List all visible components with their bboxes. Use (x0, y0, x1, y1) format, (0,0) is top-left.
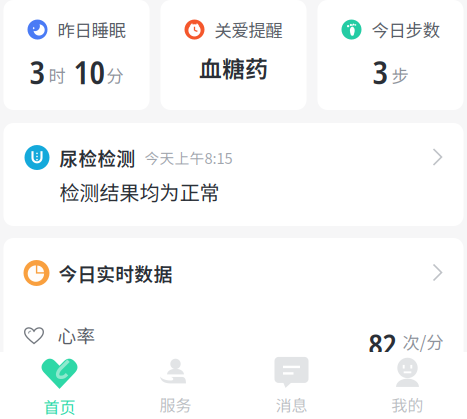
staticText: 检测结果均为正常 (59, 177, 219, 206)
staticText: 3 (372, 50, 388, 94)
staticText: 82 (368, 324, 396, 364)
staticText: 今日步数 (371, 17, 439, 42)
button[interactable]: 关爱提醒 (160, 0, 306, 110)
staticText: 10 (73, 50, 105, 94)
staticText: 分 (106, 63, 123, 88)
staticText: 心率 (57, 321, 95, 348)
button[interactable]: 今日实时数据 (3, 238, 463, 308)
button[interactable]: 尿检检测 (3, 123, 463, 226)
staticText: 步 (391, 63, 408, 88)
staticText: 血糖药 (199, 51, 268, 84)
staticText: 关爱提醒 (214, 17, 282, 42)
staticText: 我的 (391, 393, 423, 416)
button[interactable]: 昨日睡眠 (3, 0, 149, 110)
button[interactable]: 服务 (117, 352, 233, 419)
button[interactable]: 心率 (3, 308, 463, 362)
staticText: 今日实时数据 (58, 259, 172, 286)
staticText: 服务 (159, 393, 191, 416)
staticText: 尿检检测 (59, 144, 135, 171)
staticText: 消息 (275, 393, 307, 416)
staticText: 3 (29, 50, 45, 94)
staticText: 今天上午8:15 (144, 147, 232, 168)
button[interactable]: 我的 (349, 352, 465, 419)
staticText: 昨日睡眠 (57, 17, 125, 42)
staticText: 首页 (43, 395, 75, 418)
staticText: 时 (48, 63, 65, 88)
button[interactable]: 今日步数 (317, 0, 463, 110)
staticText: 次/分 (402, 329, 443, 354)
button[interactable]: 首页 (1, 352, 117, 419)
button[interactable]: 消息 (233, 352, 349, 419)
